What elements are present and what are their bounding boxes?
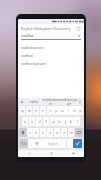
button[interactable]: m (68, 128, 74, 137)
staticText: d (38, 119, 41, 124)
staticText: k (70, 119, 72, 124)
button[interactable]: k (68, 117, 74, 126)
staticText: m (69, 130, 73, 135)
button[interactable]: d (36, 117, 42, 126)
button[interactable]: o (71, 106, 77, 115)
staticText: v (49, 130, 51, 135)
button[interactable]: s (29, 117, 35, 126)
button[interactable]: z (27, 128, 33, 137)
staticText: n (63, 130, 66, 135)
staticText: nadha (21, 33, 34, 39)
button[interactable]: a (22, 117, 28, 126)
button[interactable]: Recents (62, 150, 84, 157)
staticText: e (35, 108, 37, 113)
staticText: t (49, 108, 51, 113)
button[interactable]: , (28, 139, 34, 148)
button[interactable]: More suggestions (78, 100, 82, 104)
button[interactable]: Home (40, 150, 62, 157)
button[interactable]: English (40, 139, 66, 148)
button[interactable]: j (62, 117, 68, 126)
button[interactable]: nadhaswaram (21, 43, 81, 51)
button[interactable]: v (47, 128, 53, 137)
staticText: English Malayalam Dictionary (21, 26, 71, 31)
button[interactable]: Search (73, 139, 82, 148)
button[interactable]: b (54, 128, 60, 137)
staticText: r (42, 108, 44, 113)
staticText: , (31, 141, 32, 146)
staticText: s (31, 119, 33, 124)
staticText: w (28, 108, 31, 113)
staticText: l (77, 119, 78, 124)
staticText: nadhaswaram (21, 45, 44, 50)
staticText: c (42, 130, 44, 135)
button[interactable]: nadha (24, 98, 42, 105)
staticText: nadhavinyasam (60, 98, 78, 105)
staticText: . (70, 141, 71, 146)
staticText: z (29, 130, 31, 135)
staticText: y (55, 108, 57, 113)
button[interactable]: nadha (21, 32, 81, 40)
button[interactable]: g (50, 117, 56, 126)
staticText: nadha (29, 100, 38, 104)
staticText: u (61, 108, 64, 113)
staticText: j (65, 119, 66, 124)
staticText: o (73, 108, 76, 113)
staticText: g (52, 119, 55, 124)
button[interactable]: Backspace (75, 128, 83, 137)
staticText: b (56, 130, 59, 135)
staticText: i (68, 108, 69, 113)
staticText: h (58, 119, 61, 124)
button[interactable]: Options (76, 26, 81, 31)
button[interactable]: f (43, 117, 49, 126)
button[interactable]: ?123 (19, 139, 28, 148)
button[interactable]: h (56, 117, 62, 126)
button[interactable]: w (26, 106, 32, 115)
button[interactable]: Back (18, 150, 40, 157)
staticText: p (79, 108, 82, 113)
button[interactable]: r (40, 106, 46, 115)
button[interactable]: u (59, 106, 65, 115)
staticText: English (48, 142, 58, 146)
button[interactable]: Shift (19, 128, 27, 137)
staticText: nadhaswaram (42, 98, 60, 105)
staticText: x (35, 130, 37, 135)
button[interactable]: Settings (20, 100, 24, 104)
button[interactable]: t (47, 106, 53, 115)
staticText: f (45, 119, 47, 124)
button[interactable]: nadhaswaram (42, 98, 60, 105)
button[interactable]: i (65, 106, 71, 115)
staticText: q (21, 108, 24, 113)
button[interactable]: q (19, 106, 25, 115)
staticText: nadhan (21, 53, 34, 58)
button[interactable]: p (77, 106, 83, 115)
button[interactable]: x (33, 128, 39, 137)
button[interactable]: e (33, 106, 39, 115)
button[interactable]: l (74, 117, 80, 126)
button[interactable]: . (67, 139, 73, 148)
button[interactable]: nadhavinyasam (60, 98, 78, 105)
staticText: nadhavinyasam (21, 61, 47, 66)
button[interactable]: n (61, 128, 67, 137)
button[interactable]: c (40, 128, 46, 137)
staticText: ?123 (20, 142, 27, 146)
button[interactable]: nadhavinyasam (21, 59, 81, 67)
button[interactable]: Emoji (34, 139, 40, 148)
button[interactable]: y (53, 106, 59, 115)
staticText: a (24, 119, 26, 124)
button[interactable]: nadhan (21, 51, 81, 59)
